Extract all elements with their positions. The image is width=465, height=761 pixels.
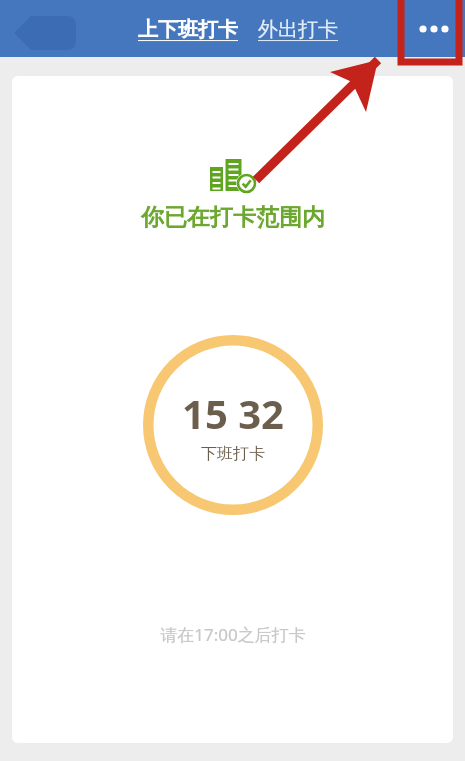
button[interactable]: 外出打卡 <box>256 13 340 46</box>
staticText: 你已在打卡范围内 <box>141 203 325 232</box>
other: In check-in range <box>210 155 256 193</box>
button[interactable]: Back <box>14 16 76 50</box>
staticText: 外出打卡 <box>258 17 338 42</box>
staticText: 请在17:00之后打卡 <box>160 623 306 646</box>
button[interactable]: 上下班打卡 <box>136 13 240 46</box>
staticText: 下班打卡 <box>201 444 265 464</box>
staticText: 15 32 <box>182 386 284 440</box>
staticText: 上下班打卡 <box>138 17 238 42</box>
button[interactable]: More options <box>408 3 460 55</box>
button[interactable]: 15 32 <box>143 335 323 515</box>
